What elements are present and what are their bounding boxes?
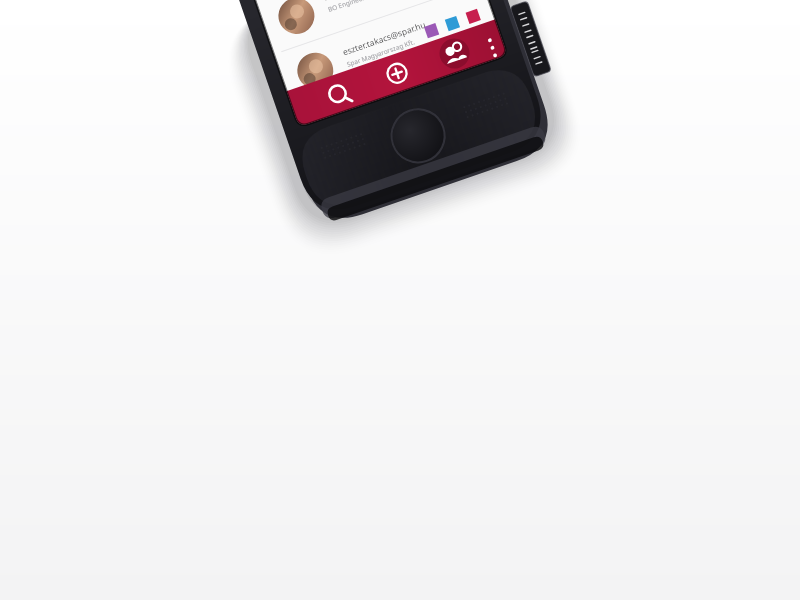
button[interactable]: Phone mockup showing a contacts list app — [0, 0, 800, 600]
